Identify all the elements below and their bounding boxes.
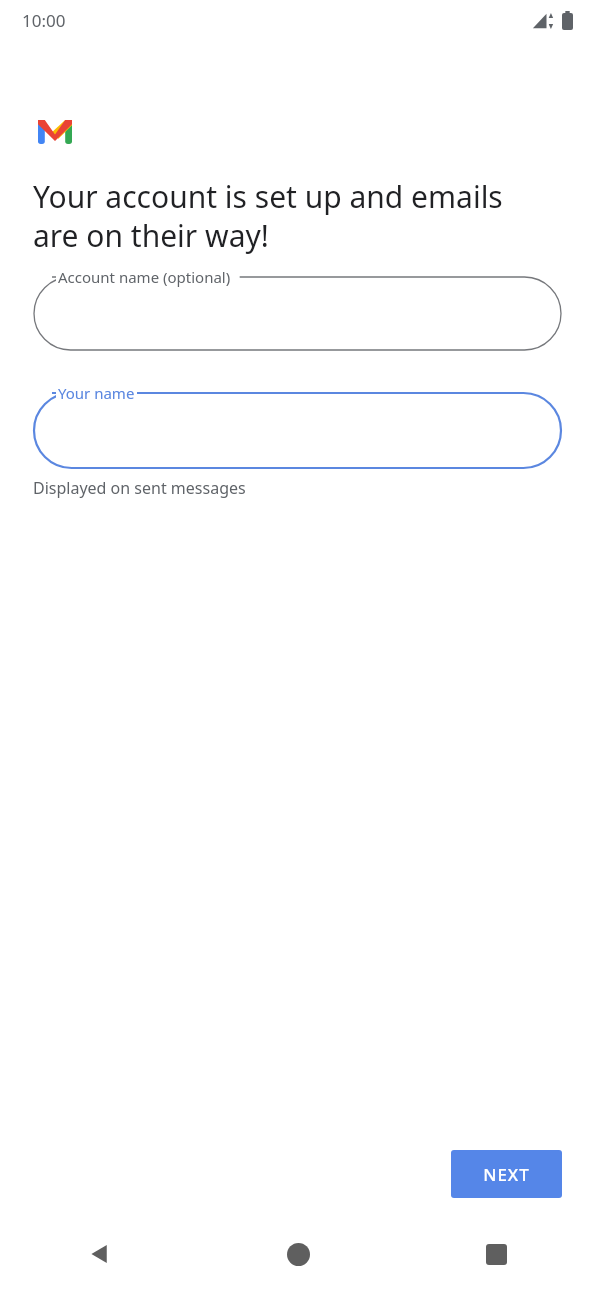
staticText: Your name — [58, 383, 135, 403]
button[interactable]: Account name (optional) — [34, 277, 561, 350]
staticText: NEXT — [483, 1163, 530, 1186]
button[interactable]: Recent apps — [397, 1218, 595, 1290]
staticText: Your account is set up and emails are on… — [33, 176, 555, 255]
staticText: Account name (optional) — [58, 267, 231, 287]
button[interactable]: NEXT — [451, 1150, 562, 1198]
button[interactable]: Home — [199, 1218, 397, 1290]
button[interactable]: Back — [0, 1218, 199, 1290]
button[interactable]: Your name — [34, 393, 561, 468]
staticText: 10:00 — [22, 9, 66, 32]
staticText: Displayed on sent messages — [33, 477, 246, 499]
